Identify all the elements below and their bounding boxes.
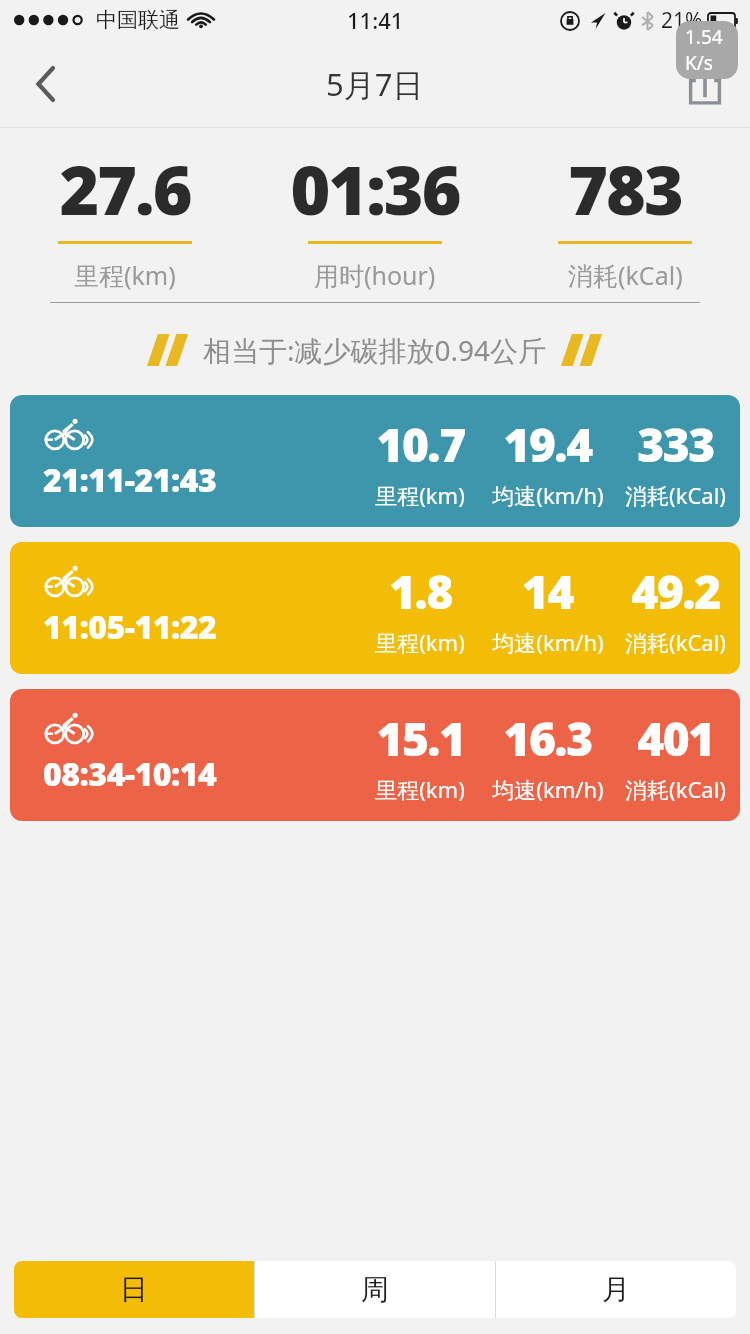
staticText: 1.8 — [389, 560, 452, 623]
button[interactable]: 21:11-21:43 — [10, 395, 740, 527]
staticText: 49.2 — [631, 560, 720, 623]
staticText: 均速(km/h) — [492, 774, 604, 804]
button[interactable]: Back — [20, 58, 72, 110]
staticText: 中国联通 — [96, 7, 180, 33]
staticText: 14 — [522, 560, 573, 623]
button[interactable]: 11:05-11:22 — [10, 542, 740, 674]
staticText: 里程(km) — [375, 627, 465, 657]
staticText: 19.4 — [503, 413, 592, 476]
staticText: 用时(hour) — [314, 258, 436, 292]
staticText: 相当于:减少碳排放0.94公斤 — [203, 331, 547, 369]
staticText: 周 — [361, 1272, 389, 1307]
staticText: 333 — [637, 413, 714, 476]
button[interactable]: 周 — [255, 1261, 495, 1318]
staticText: 15.1 — [376, 707, 465, 770]
staticText: 里程(km) — [375, 480, 465, 510]
button[interactable]: Share — [674, 53, 736, 115]
staticText: 月 — [602, 1272, 630, 1307]
button[interactable]: 08:34-10:14 — [10, 689, 740, 821]
staticText: 均速(km/h) — [492, 627, 604, 657]
button[interactable]: 日 — [14, 1261, 254, 1318]
staticText: 里程(km) — [375, 774, 465, 804]
staticText: 消耗(kCal) — [568, 258, 683, 292]
staticText: 21% — [661, 6, 703, 35]
staticText: 27.6 — [59, 142, 191, 235]
staticText: 消耗(kCal) — [625, 774, 726, 804]
staticText: 21:11-21:43 — [43, 458, 217, 502]
staticText: 均速(km/h) — [492, 480, 604, 510]
staticText: 11:41 — [347, 5, 404, 35]
staticText: 783 — [568, 142, 682, 235]
staticText: 消耗(kCal) — [625, 480, 726, 510]
staticText: 1.54K/s — [685, 24, 729, 76]
staticText: 401 — [637, 707, 714, 770]
staticText: 10.7 — [376, 413, 465, 476]
button[interactable]: 月 — [496, 1261, 736, 1318]
staticText: 08:34-10:14 — [43, 752, 217, 796]
staticText: 5月7日 — [326, 63, 424, 105]
staticText: 16.3 — [503, 707, 592, 770]
staticText: 11:05-11:22 — [43, 605, 217, 649]
staticText: 里程(km) — [74, 258, 176, 292]
staticText: 日 — [120, 1272, 148, 1307]
staticText: 01:36 — [290, 142, 460, 235]
staticText: 消耗(kCal) — [625, 627, 726, 657]
